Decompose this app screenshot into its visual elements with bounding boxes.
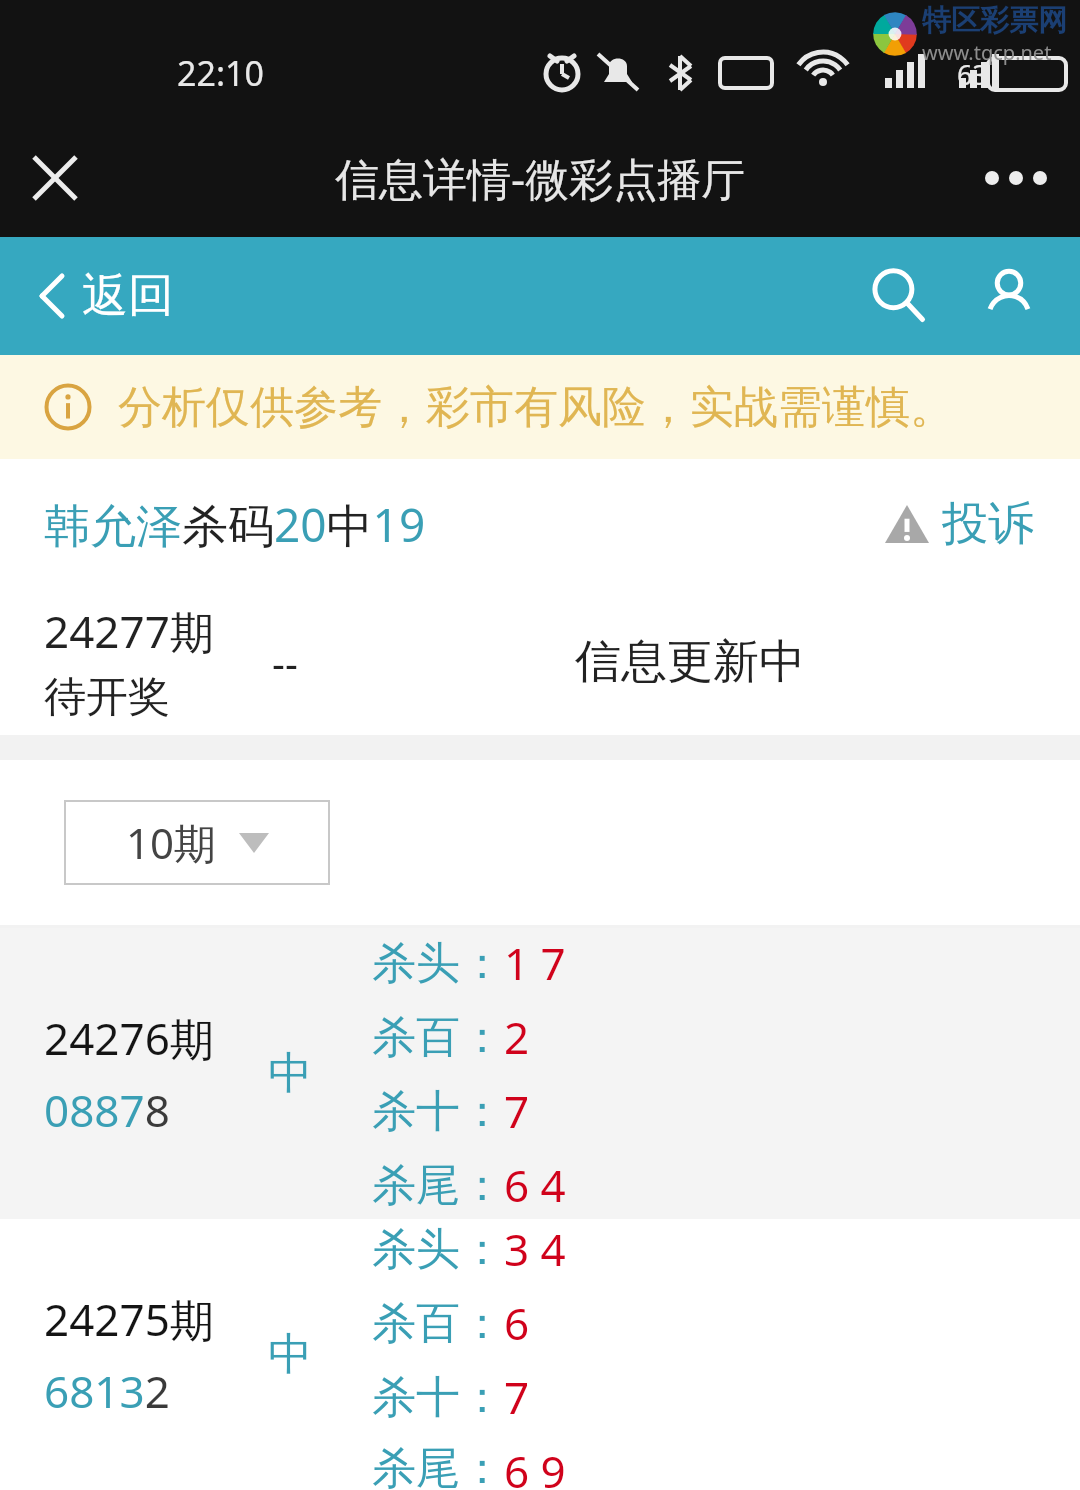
staticText: 08878	[44, 1080, 170, 1140]
button[interactable]: 24275期	[0, 1219, 1080, 1490]
staticText: 6 9	[504, 1441, 566, 1490]
button[interactable]: 返回	[34, 257, 180, 335]
staticText: 返回	[82, 267, 174, 325]
staticText: 待开奖	[44, 671, 170, 724]
staticText: 24276期	[44, 1008, 214, 1068]
staticText: 分析仅供参考，彩市有风险，实战需谨慎。	[118, 380, 954, 435]
staticText: 68132	[44, 1361, 170, 1421]
staticText: 杀头：	[372, 1222, 504, 1277]
staticText: 7	[504, 1081, 530, 1141]
staticText: 韩允泽杀码20中19	[44, 493, 426, 556]
staticText: 信息详情-微彩点播厅	[335, 148, 746, 208]
staticText: 信息更新中	[575, 633, 805, 691]
staticText: 6 4	[504, 1155, 566, 1215]
staticText: 杀尾：	[372, 1158, 504, 1213]
button[interactable]: Close	[18, 141, 92, 215]
button[interactable]: Search	[856, 253, 942, 339]
staticText: 22:10	[177, 50, 264, 96]
staticText: 6	[504, 1293, 530, 1353]
staticText: 杀十：	[372, 1370, 504, 1425]
button[interactable]: More options	[976, 138, 1056, 218]
staticText: 中	[268, 1327, 312, 1382]
staticText: 投诉	[942, 495, 1034, 553]
staticText: 24277期	[44, 601, 214, 661]
staticText: 63	[957, 56, 988, 93]
button[interactable]: 投诉	[876, 489, 1040, 559]
staticText: 1 7	[504, 933, 566, 993]
staticText: www.tqcp.net	[922, 39, 1052, 66]
staticText: 杀百：	[372, 1296, 504, 1351]
button[interactable]: Profile	[966, 253, 1052, 339]
staticText: --	[272, 635, 298, 689]
staticText: 3 4	[504, 1219, 566, 1279]
staticText: 特区彩票网	[922, 2, 1067, 39]
staticText: 杀十：	[372, 1084, 504, 1139]
staticText: 2	[504, 1007, 530, 1067]
staticText: 杀百：	[372, 1010, 504, 1065]
staticText: 24275期	[44, 1289, 214, 1349]
staticText: 7	[504, 1367, 530, 1427]
staticText: 杀头：	[372, 936, 504, 991]
staticText: 杀尾：	[372, 1441, 504, 1490]
button[interactable]: 10期	[64, 800, 330, 885]
staticText: 中	[268, 1046, 312, 1101]
button[interactable]: 24276期	[0, 928, 1080, 1219]
staticText: 10期	[126, 814, 217, 871]
